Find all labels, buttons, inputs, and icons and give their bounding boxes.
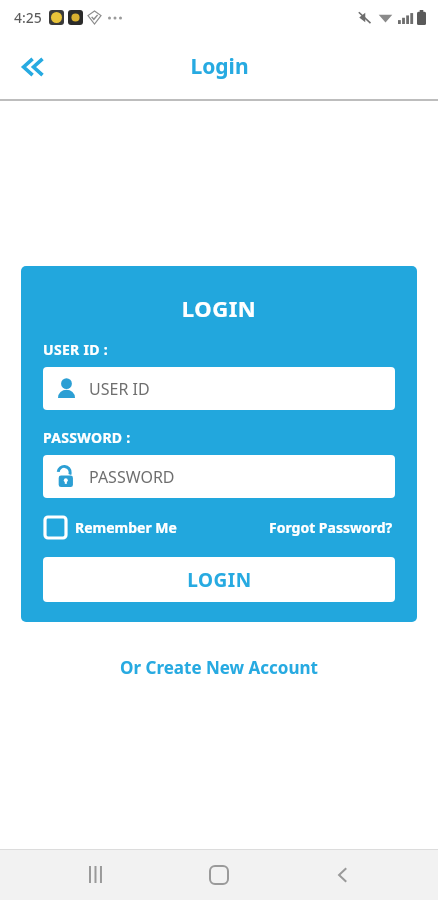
button[interactable]: Or Create New Account: [112, 652, 326, 683]
button[interactable]: Back: [315, 849, 371, 900]
staticText: Or Create New Account: [120, 656, 318, 679]
staticText: 4:25: [14, 8, 42, 27]
button[interactable]: Home: [191, 849, 247, 900]
button[interactable]: Recent apps: [68, 849, 124, 900]
staticText: LOGIN: [43, 293, 395, 323]
button[interactable]: PASSWORD: [43, 455, 395, 498]
button[interactable]: Remember Me: [43, 515, 179, 540]
staticText: Remember Me: [75, 518, 177, 537]
button[interactable]: Forgot Password?: [267, 516, 395, 539]
staticText: Login: [190, 52, 249, 81]
staticText: USER ID: [89, 378, 150, 400]
staticText: LOGIN: [187, 567, 252, 593]
staticText: USER ID :: [43, 340, 108, 359]
button[interactable]: LOGIN: [43, 557, 395, 602]
button[interactable]: Back: [6, 41, 58, 93]
staticText: Forgot Password?: [269, 518, 393, 537]
staticText: PASSWORD :: [43, 428, 131, 447]
button[interactable]: USER ID: [43, 367, 395, 410]
staticText: PASSWORD: [89, 466, 175, 488]
